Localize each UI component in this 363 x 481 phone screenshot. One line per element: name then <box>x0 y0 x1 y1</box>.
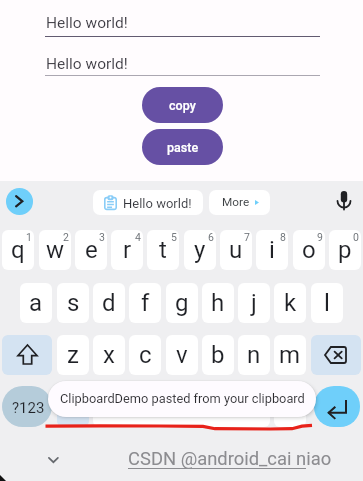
staticText: 5 <box>171 231 177 243</box>
staticText: i <box>269 236 275 264</box>
button[interactable]: Emoji <box>57 386 89 427</box>
staticText: p <box>338 236 352 264</box>
staticText: x <box>103 341 115 369</box>
button[interactable]: Space <box>93 386 270 427</box>
button[interactable]: w <box>39 230 71 270</box>
button[interactable]: c <box>129 335 161 375</box>
staticText: d <box>102 289 116 317</box>
staticText: a <box>29 289 43 317</box>
button[interactable]: x <box>93 335 125 375</box>
button[interactable] <box>209 190 270 215</box>
staticText: g <box>175 289 189 317</box>
staticText: h <box>211 289 225 317</box>
button[interactable]: l <box>311 283 343 323</box>
staticText: v <box>176 341 188 369</box>
button[interactable]: Period <box>274 386 306 427</box>
button[interactable]: ?123 <box>2 386 52 427</box>
button[interactable]: u <box>220 230 252 270</box>
staticText: c <box>139 341 152 369</box>
button[interactable]: v <box>166 335 198 375</box>
button[interactable]: Enter <box>314 386 360 427</box>
button[interactable]: o <box>293 230 325 270</box>
staticText: e <box>85 236 98 264</box>
staticText: 0 <box>353 231 359 243</box>
button[interactable]: q <box>2 230 34 270</box>
button[interactable]: j <box>238 283 270 323</box>
staticText: n <box>247 341 261 369</box>
staticText: 6 <box>208 231 214 243</box>
staticText: 8 <box>280 231 286 243</box>
staticText: f <box>141 289 150 317</box>
staticText: CSDN @android_cai niao <box>128 448 332 470</box>
button[interactable]: Voice input <box>332 189 356 214</box>
staticText: m <box>279 341 301 369</box>
button[interactable]: r <box>111 230 143 270</box>
button[interactable]: m <box>274 335 306 375</box>
button[interactable]: paste <box>142 129 223 165</box>
button[interactable]: k <box>274 283 306 323</box>
staticText: copy <box>169 98 196 113</box>
button[interactable]: z <box>57 335 89 375</box>
staticText: u <box>229 236 243 264</box>
staticText: ?123 <box>12 399 45 417</box>
staticText: r <box>123 236 132 264</box>
button[interactable]: y <box>184 230 216 270</box>
button[interactable]: s <box>57 283 89 323</box>
staticText: q <box>11 236 25 264</box>
staticText: l <box>324 289 330 317</box>
button[interactable]: d <box>93 283 125 323</box>
button[interactable] <box>93 190 203 215</box>
staticText: k <box>284 289 297 317</box>
button[interactable]: Shift <box>2 335 52 375</box>
button[interactable]: a <box>20 283 52 323</box>
staticText: Hello world! <box>123 196 192 211</box>
button[interactable]: copy <box>142 87 223 123</box>
staticText: o <box>302 236 316 264</box>
staticText: b <box>211 341 225 369</box>
button[interactable]: b <box>202 335 234 375</box>
button[interactable]: p <box>329 230 361 270</box>
button[interactable]: t <box>147 230 179 270</box>
staticText: ClipboardDemo pasted from your clipboard <box>60 391 305 406</box>
staticText: j <box>251 289 257 317</box>
staticText: y <box>194 236 206 264</box>
button[interactable]: f <box>129 283 161 323</box>
staticText: 3 <box>99 231 105 243</box>
button[interactable]: h <box>202 283 234 323</box>
staticText: 4 <box>135 231 141 243</box>
staticText: s <box>67 289 80 317</box>
staticText: 7 <box>244 231 250 243</box>
button[interactable]: n <box>238 335 270 375</box>
staticText: 1 <box>26 231 32 243</box>
staticText: z <box>67 341 79 369</box>
staticText: More <box>222 195 250 209</box>
staticText: 9 <box>317 231 323 243</box>
staticText: 2 <box>63 231 69 243</box>
staticText: Hello world! <box>46 55 128 73</box>
staticText: t <box>159 236 167 264</box>
button[interactable]: e <box>75 230 107 270</box>
staticText: Hello world! <box>46 14 128 32</box>
staticText: paste <box>167 140 199 155</box>
staticText: w <box>46 236 65 264</box>
button[interactable]: i <box>256 230 288 270</box>
button[interactable]: Backspace <box>311 335 361 375</box>
button[interactable]: Expand toolbar <box>6 188 33 215</box>
button[interactable]: g <box>166 283 198 323</box>
